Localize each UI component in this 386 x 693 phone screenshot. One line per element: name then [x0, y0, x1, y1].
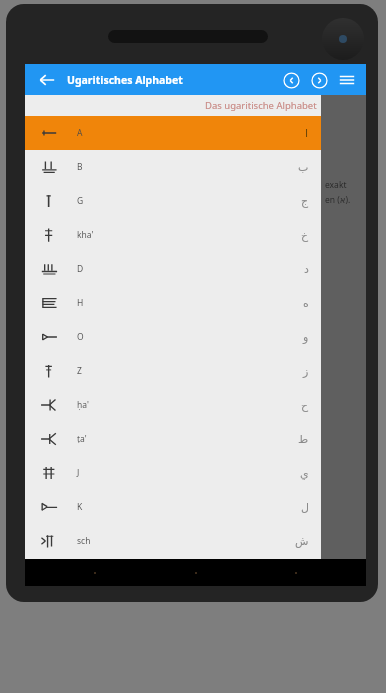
- staticText: ج: [301, 195, 309, 208]
- staticText: ل: [301, 501, 309, 514]
- staticText: ح: [301, 399, 309, 412]
- button[interactable]: K: [25, 490, 321, 524]
- staticText: Z: [77, 365, 82, 377]
- staticText: ب: [298, 161, 309, 174]
- button[interactable]: H: [25, 286, 321, 320]
- staticText: B: [77, 161, 83, 173]
- button[interactable]: O: [25, 320, 321, 354]
- staticText: sch: [77, 535, 91, 547]
- button[interactable]: B: [25, 150, 321, 184]
- button[interactable]: J: [25, 456, 321, 490]
- button[interactable]: ṭa': [25, 422, 321, 456]
- button[interactable]: G: [25, 184, 321, 218]
- staticText: ز: [303, 365, 309, 378]
- staticText: ا: [305, 127, 309, 140]
- button[interactable]: ḥa': [25, 388, 321, 422]
- staticText: ه: [303, 297, 309, 310]
- staticText: G: [77, 195, 84, 207]
- staticText: و: [303, 331, 309, 344]
- button[interactable]: Next: [306, 67, 332, 93]
- button[interactable]: Previous: [278, 67, 304, 93]
- button[interactable]: kha': [25, 218, 321, 252]
- staticText: ṭa': [77, 433, 87, 445]
- button[interactable]: Z: [25, 354, 321, 388]
- button[interactable]: Menu: [334, 67, 360, 93]
- staticText: ش: [295, 535, 309, 548]
- button[interactable]: sch: [25, 524, 321, 558]
- button[interactable]: Back: [33, 66, 61, 94]
- staticText: Das ugaritische Alphabet: [205, 99, 317, 112]
- staticText: ط: [298, 433, 309, 446]
- staticText: J: [77, 467, 80, 479]
- staticText: K: [77, 501, 83, 513]
- staticText: A: [77, 127, 83, 139]
- staticText: H: [77, 297, 84, 309]
- staticText: د: [304, 263, 309, 276]
- staticText: en (א).: [325, 194, 351, 206]
- staticText: خ: [301, 229, 309, 242]
- button[interactable]: D: [25, 252, 321, 286]
- staticText: ḥa': [77, 399, 89, 411]
- staticText: exakt: [325, 179, 347, 191]
- staticText: O: [77, 331, 84, 343]
- staticText: ي: [300, 467, 309, 480]
- staticText: Ugaritisches Alphabet: [67, 73, 183, 87]
- staticText: kha': [77, 229, 94, 241]
- staticText: D: [77, 263, 84, 275]
- button[interactable]: A: [25, 116, 321, 150]
